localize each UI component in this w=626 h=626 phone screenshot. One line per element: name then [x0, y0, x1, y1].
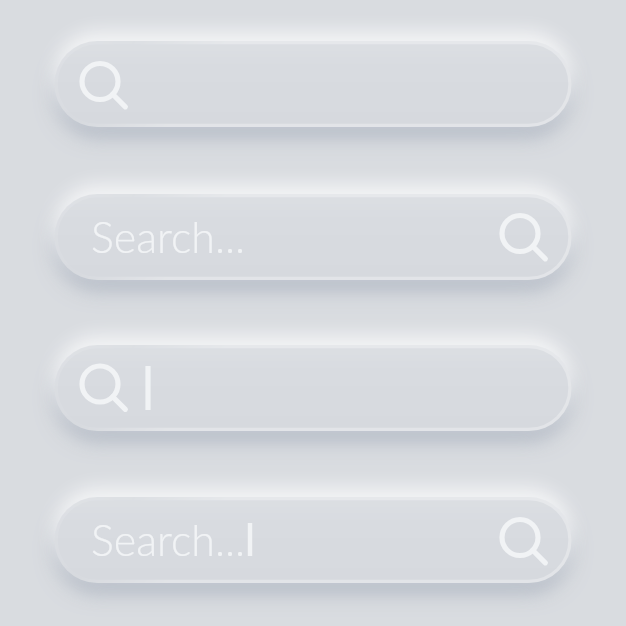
button[interactable]: Search — [55, 497, 572, 583]
staticText: Search... — [91, 211, 246, 263]
staticText: Search... — [91, 514, 246, 566]
button[interactable]: Search — [55, 345, 572, 431]
button[interactable]: Search — [55, 194, 572, 280]
button[interactable]: Search — [55, 41, 572, 127]
